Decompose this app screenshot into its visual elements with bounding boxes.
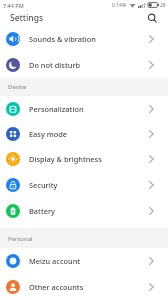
staticText: Settings: [10, 12, 44, 24]
staticText: Personal: [8, 235, 33, 243]
staticText: Easy mode: [29, 129, 68, 139]
staticText: Sounds & vibration: [29, 34, 96, 44]
staticText: 0.14%: [112, 2, 127, 9]
staticText: Personalization: [29, 104, 84, 114]
staticText: Security: [29, 180, 58, 190]
staticText: Device: [8, 83, 27, 91]
staticText: Display & brightness: [29, 154, 102, 164]
staticText: Other accounts: [29, 282, 84, 292]
staticText: Meizu account: [29, 256, 81, 266]
staticText: 29: [160, 2, 166, 9]
staticText: Battery: [29, 206, 55, 216]
staticText: 7:44 PM: [3, 2, 24, 9]
staticText: Do not disturb: [29, 60, 81, 70]
